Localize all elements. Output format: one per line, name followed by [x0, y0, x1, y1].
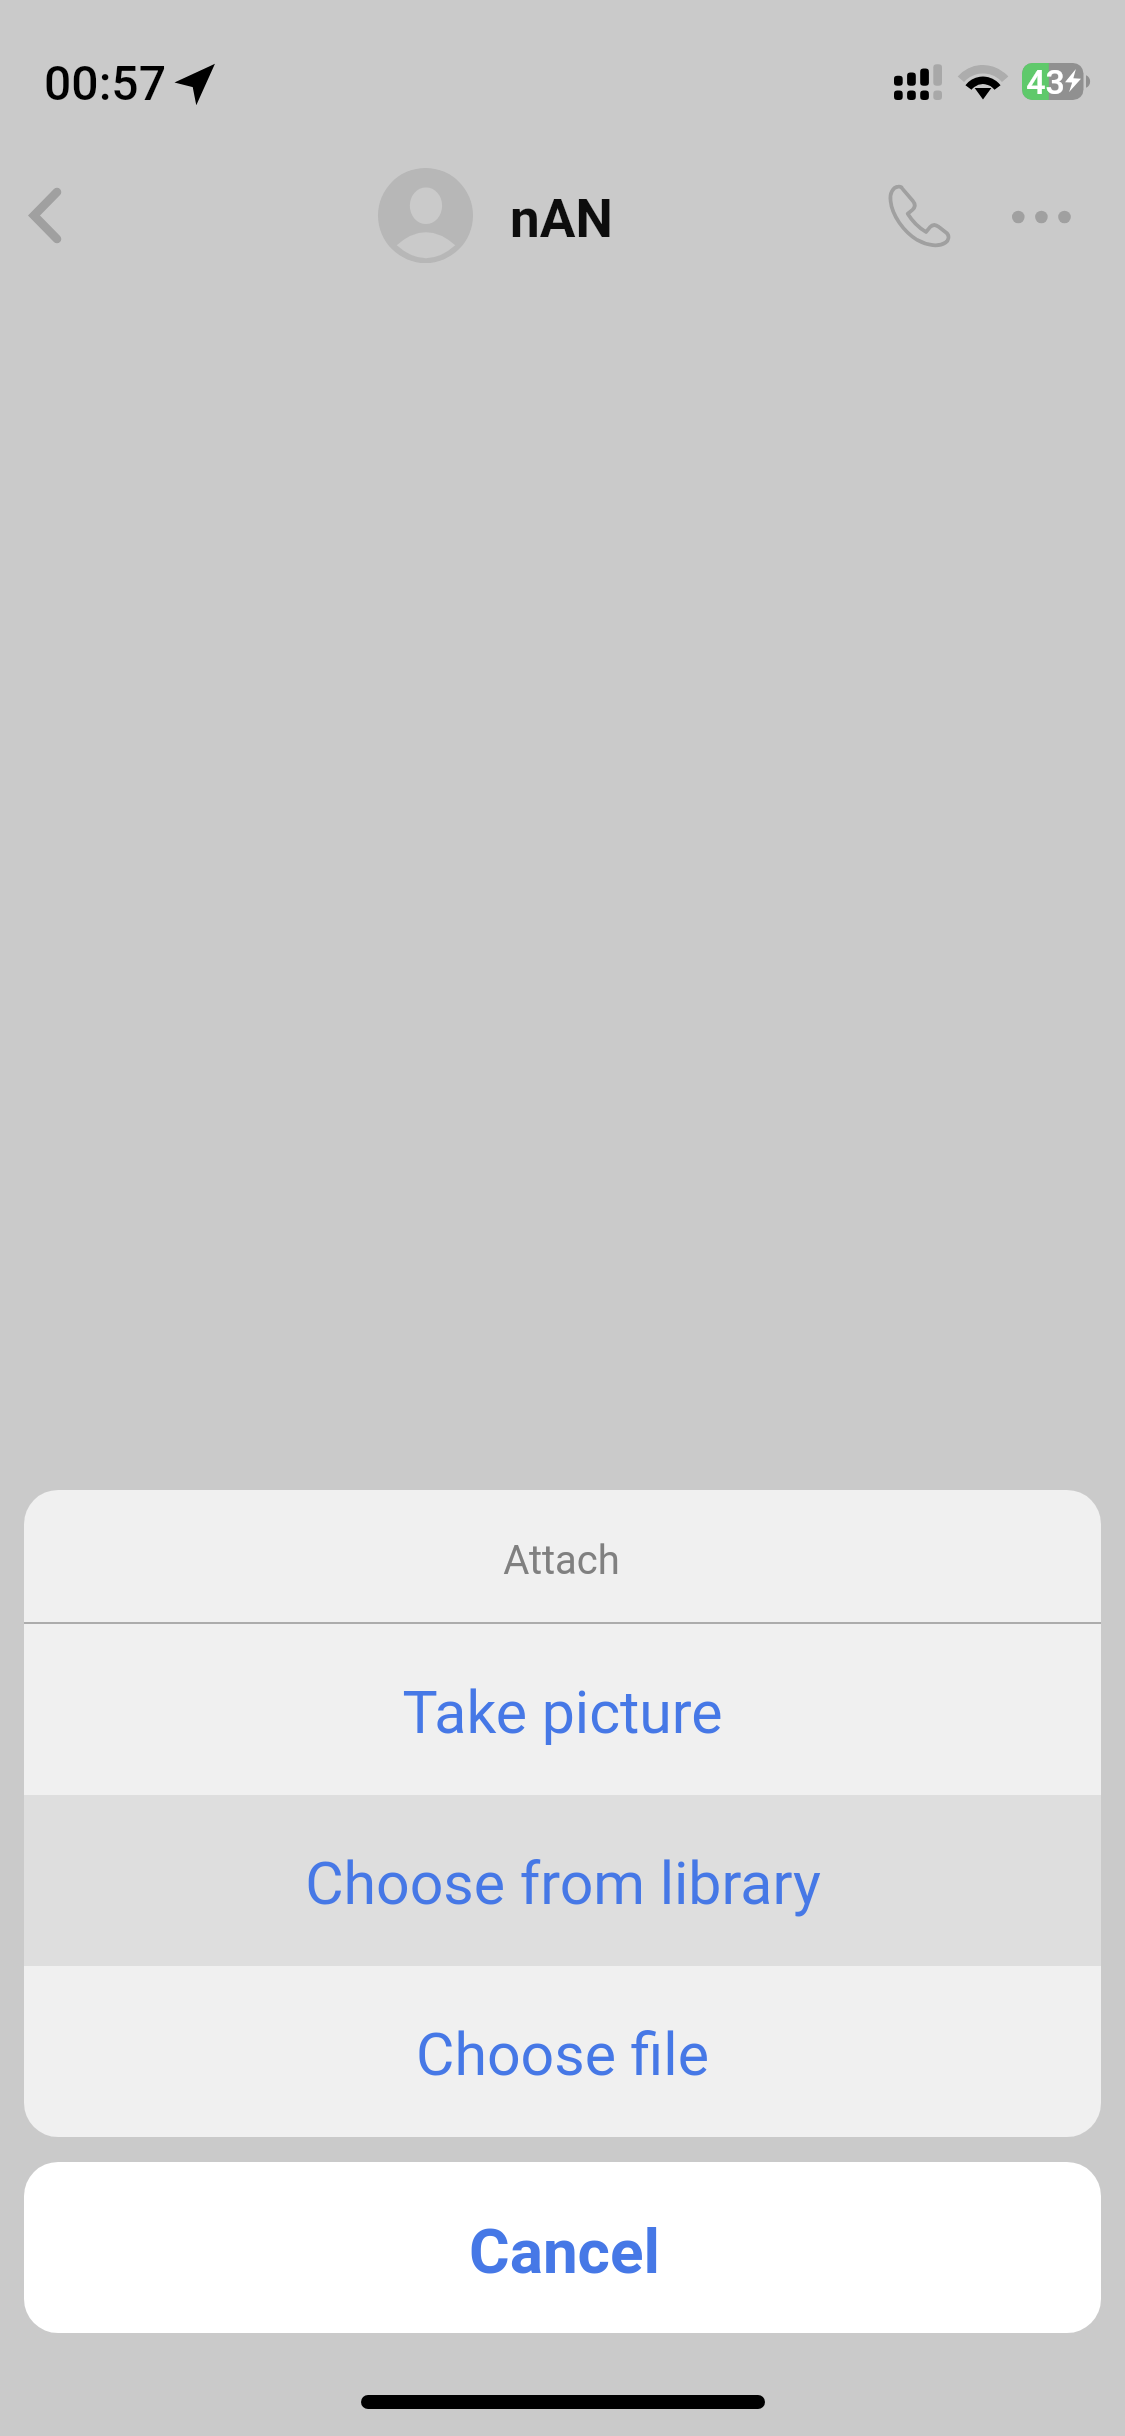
button[interactable]: Take picture — [24, 1624, 1101, 1795]
staticText: 43 — [1026, 62, 1065, 99]
staticText: Take picture — [402, 1678, 723, 1747]
button[interactable]: Choose file — [24, 1966, 1101, 2137]
button[interactable]: nAN — [370, 160, 622, 272]
button[interactable]: Back — [0, 160, 100, 270]
staticText: Choose file — [416, 2020, 709, 2089]
staticText: Choose from library — [305, 1849, 821, 1918]
button[interactable]: Call — [869, 166, 969, 266]
staticText: nAN — [510, 188, 613, 250]
button[interactable]: More options — [996, 167, 1094, 267]
staticText: Cancel — [469, 2215, 660, 2288]
button[interactable]: Cancel — [24, 2162, 1101, 2333]
button[interactable]: Choose from library — [24, 1795, 1101, 1966]
staticText: 00:57 — [44, 55, 166, 111]
staticText: Attach — [503, 1537, 620, 1584]
